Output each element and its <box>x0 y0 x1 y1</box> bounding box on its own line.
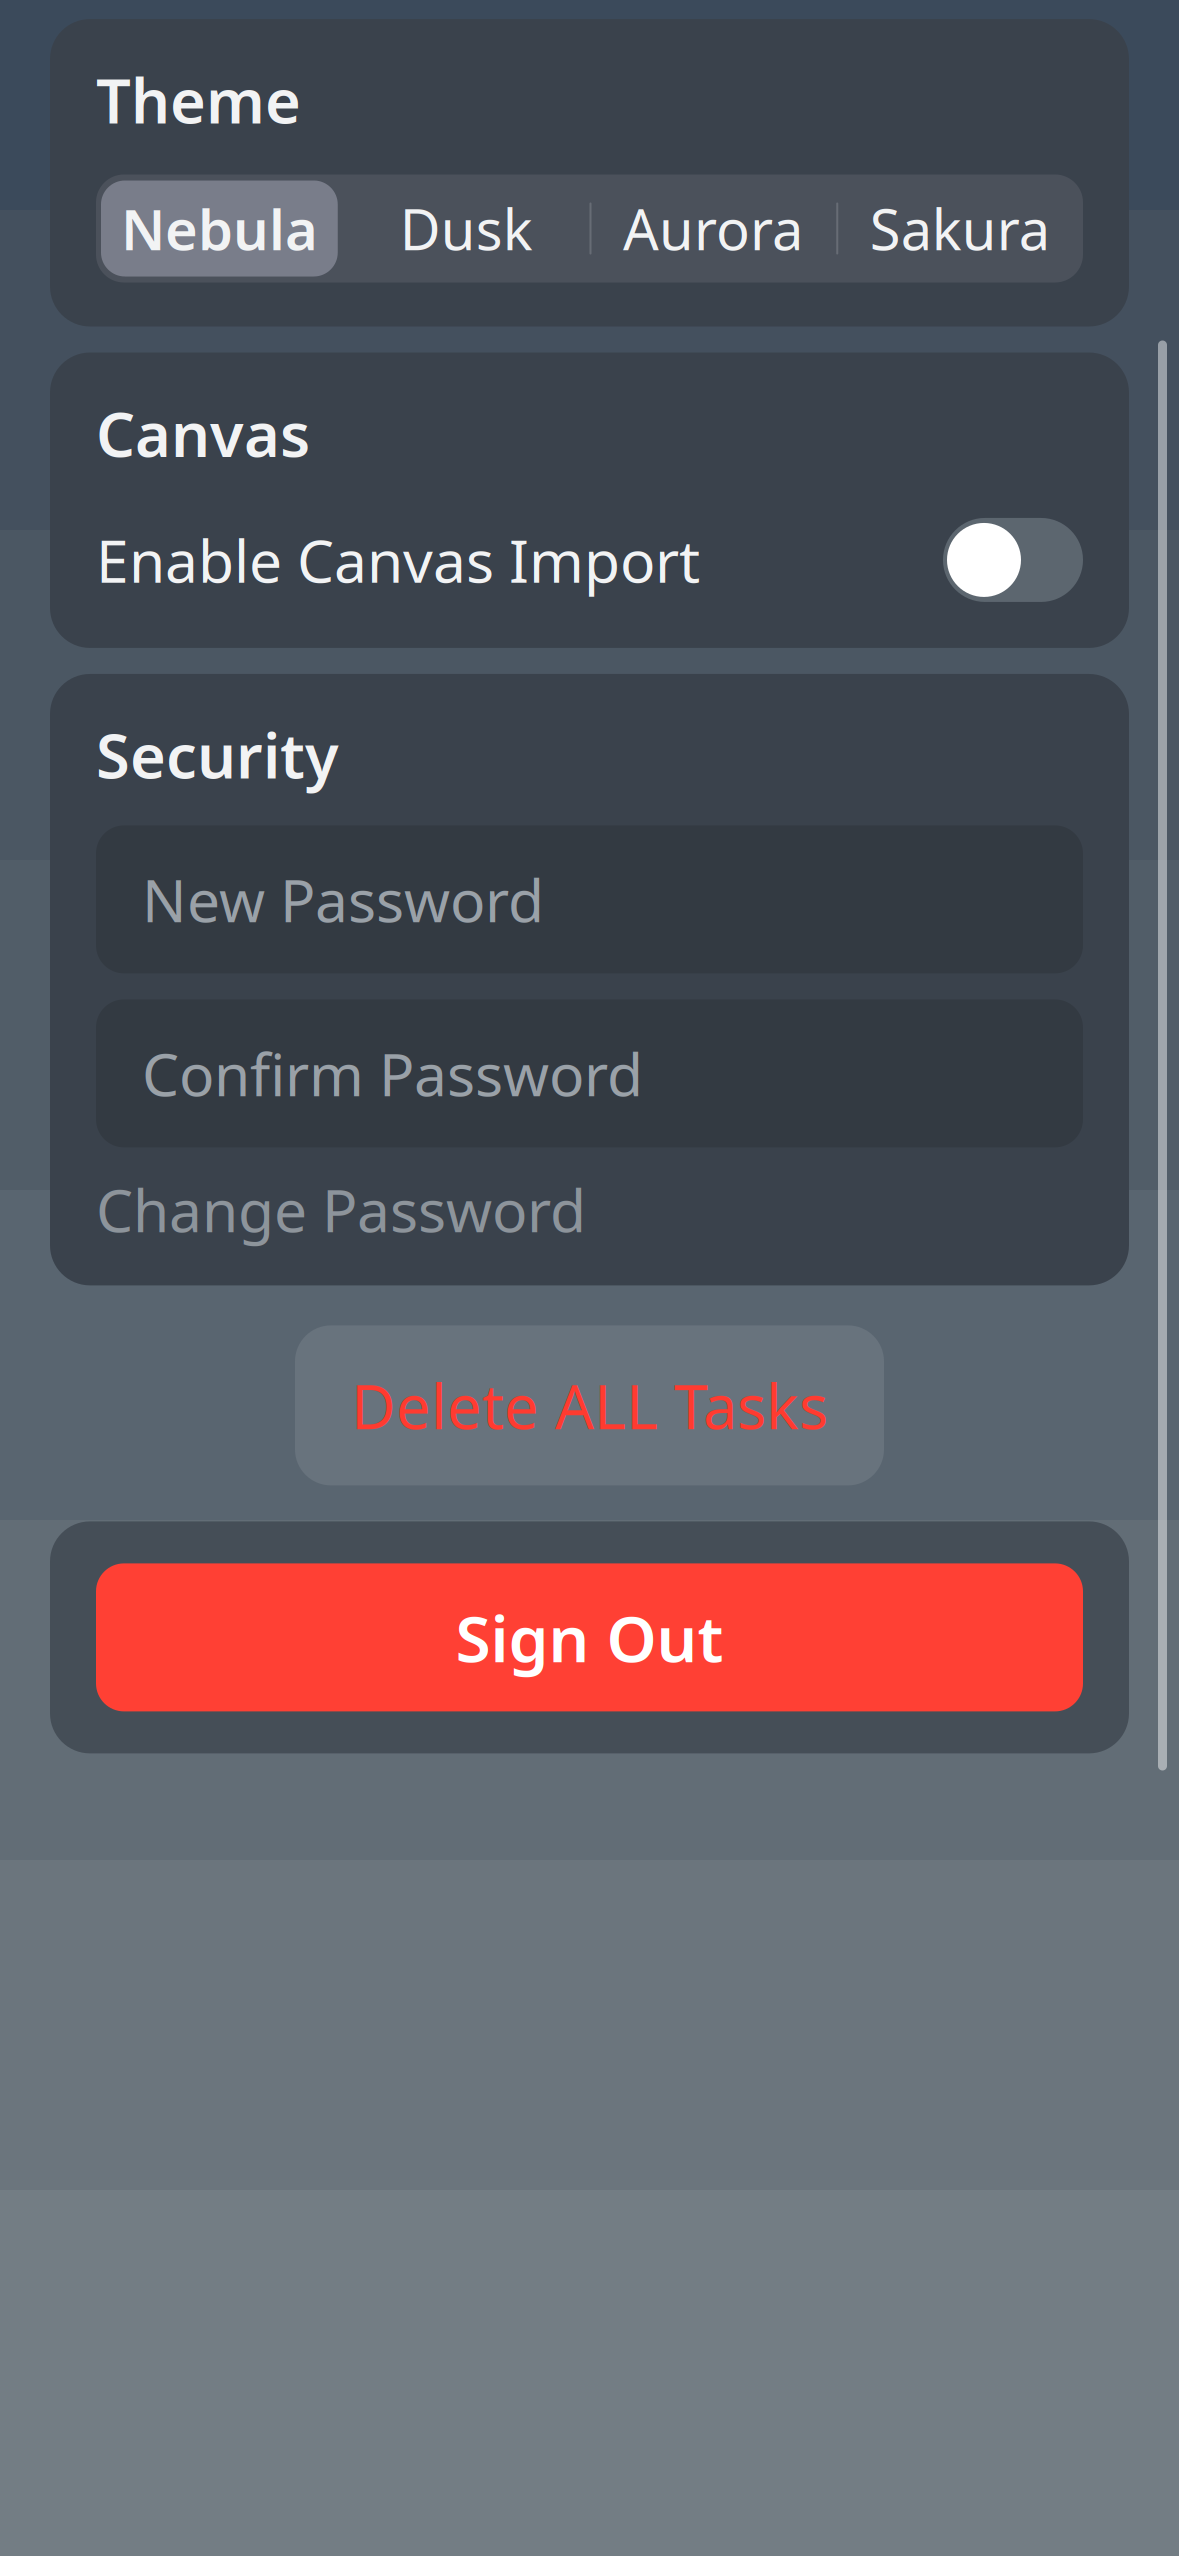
button[interactable]: Delete ALL Tasks <box>295 1325 884 1485</box>
staticText: Security <box>96 714 339 795</box>
staticText: Change Password <box>96 1170 586 1248</box>
staticText: Theme <box>96 59 301 140</box>
button[interactable]: Nebula <box>96 174 343 282</box>
staticText: Dusk <box>400 191 533 266</box>
button[interactable]: New Password <box>96 825 1083 973</box>
button[interactable]: Enable Canvas Import <box>96 514 1083 606</box>
button[interactable]: Sakura <box>836 174 1083 282</box>
staticText: Sakura <box>870 191 1050 266</box>
staticText: Aurora <box>623 191 803 266</box>
button[interactable]: Sign Out <box>96 1563 1083 1711</box>
staticText: Canvas <box>96 392 310 474</box>
staticText: New Password <box>142 860 544 938</box>
staticText: Nebula <box>121 191 318 266</box>
staticText: Enable Canvas Import <box>96 521 700 599</box>
button[interactable]: Aurora <box>589 174 836 282</box>
staticText: Delete ALL Tasks <box>351 1365 828 1446</box>
button[interactable]: Change Password <box>96 1177 1083 1241</box>
button[interactable]: Confirm Password <box>96 999 1083 1147</box>
staticText: Sign Out <box>455 1595 723 1680</box>
staticText: Confirm Password <box>142 1034 643 1112</box>
button[interactable]: Dusk <box>343 174 590 282</box>
